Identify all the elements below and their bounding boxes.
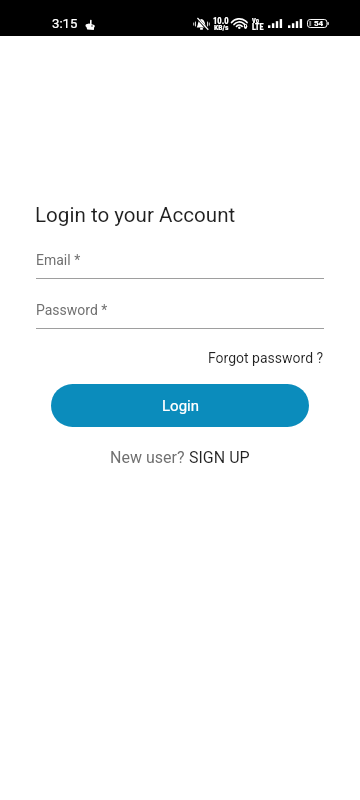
staticText: LTE [252, 22, 264, 32]
other: Mobile signal SIM 2 [288, 19, 303, 28]
other: Silent mode [85, 18, 95, 30]
staticText: Email * [36, 252, 81, 268]
staticText: KB/s [214, 23, 229, 32]
staticText: Forgot password ? [208, 350, 324, 366]
staticText: 54 [314, 19, 324, 28]
other: Vibrate only [193, 18, 210, 30]
button[interactable]: Forgot password ? [208, 350, 324, 366]
staticText: SIGN UP [189, 448, 250, 467]
button[interactable] [36, 292, 324, 329]
staticText: 10.0 [213, 16, 229, 26]
staticText: 3:15 [52, 16, 78, 31]
other: Battery 54 percent [307, 19, 329, 28]
staticText: Login [162, 397, 199, 415]
staticText: New user? [110, 448, 189, 467]
button[interactable]: New user? [110, 448, 250, 467]
button[interactable] [36, 242, 324, 279]
staticText: Login to your Account [35, 203, 236, 227]
staticText: Vo [252, 17, 259, 25]
other: Mobile signal SIM 1 [268, 19, 283, 28]
staticText: Password * [36, 302, 108, 318]
other: Wi-Fi [233, 17, 248, 29]
button[interactable]: Login [51, 384, 309, 427]
